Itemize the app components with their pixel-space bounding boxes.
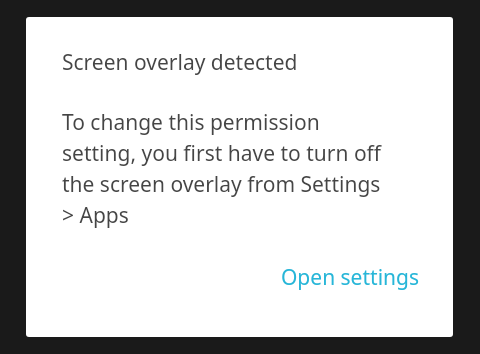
staticText: Screen overlay detected	[62, 46, 298, 76]
button[interactable]: Open settings	[272, 256, 427, 299]
staticText: Open settings	[280, 265, 419, 290]
staticText: To change this permission setting, you f…	[62, 106, 382, 230]
